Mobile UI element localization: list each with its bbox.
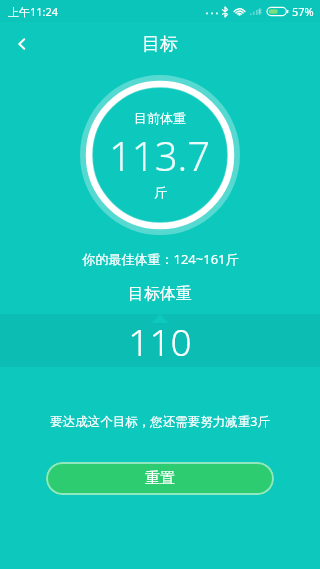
staticText: 57% [292, 4, 314, 19]
staticText: 上午11:24 [8, 4, 59, 19]
staticText: 斤 [154, 184, 167, 200]
staticText: 重置 [145, 469, 175, 488]
staticText: 目前体重 [134, 110, 186, 126]
button[interactable]: Back [0, 22, 44, 66]
button[interactable]: 110 [0, 314, 320, 367]
staticText: 目标体重 [128, 284, 192, 304]
staticText: 你的最佳体重：124~161斤 [82, 250, 239, 268]
staticText: 目标 [142, 33, 178, 56]
staticText: 110 [128, 316, 192, 366]
button[interactable]: 重置 [46, 462, 274, 495]
staticText: 要达成这个目标，您还需要努力减重3斤 [50, 413, 270, 430]
staticText: 113.7 [109, 128, 211, 182]
